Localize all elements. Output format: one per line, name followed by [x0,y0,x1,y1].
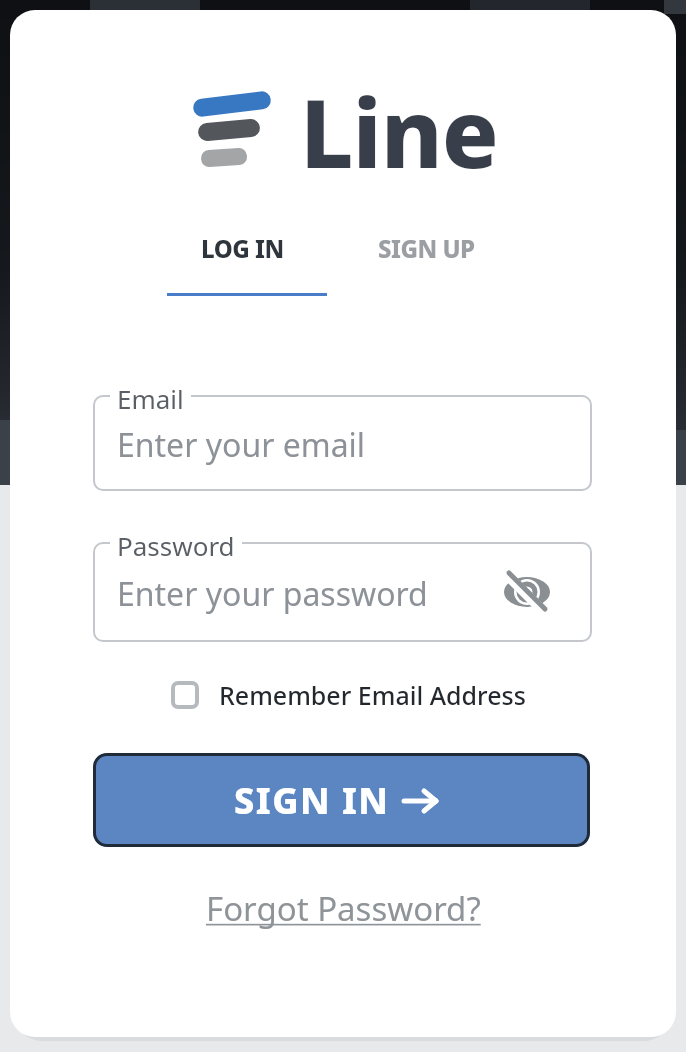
staticText: SIGN UP [378,232,475,265]
staticText: Password [117,528,235,563]
button[interactable]: Enter your email [93,395,592,491]
staticText: Forgot Password? [206,886,481,931]
staticText: LOG IN [201,232,284,265]
button[interactable]: SIGN UP [346,214,506,282]
button[interactable]: Forgot Password? [10,886,676,931]
staticText: Enter your email [117,423,366,467]
staticText: Email [117,381,184,416]
button[interactable]: Remember Email Address [171,678,526,712]
staticText: SIGN IN [234,776,390,825]
button[interactable]: Enter your password [93,542,592,642]
staticText: Remember Email Address [219,678,526,712]
staticText: Enter your password [117,572,428,616]
button[interactable]: SIGN IN [93,753,590,847]
button[interactable]: LOG IN [162,214,322,282]
staticText: Line [300,68,498,196]
